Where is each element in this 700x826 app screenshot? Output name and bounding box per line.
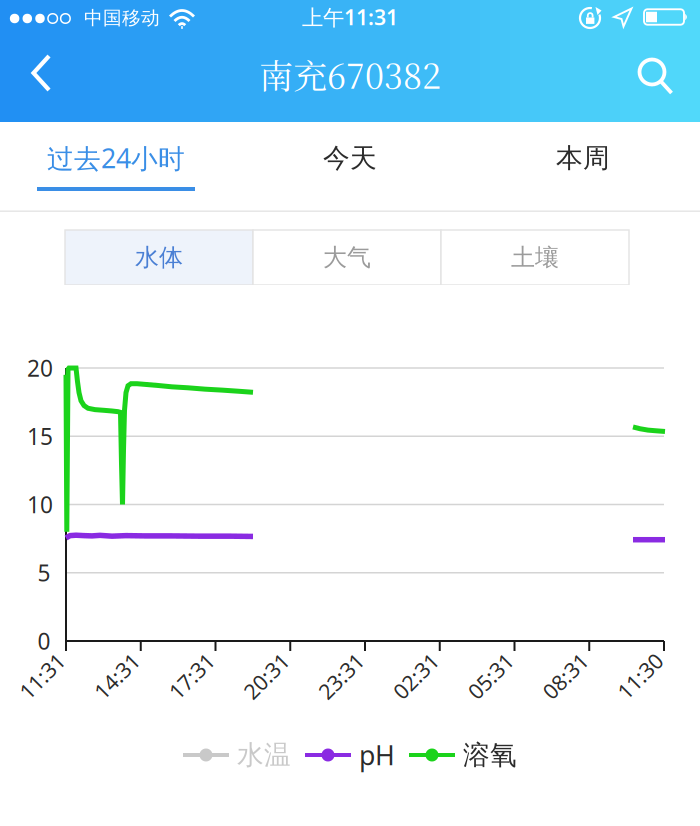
button[interactable]: 今天 bbox=[233, 123, 466, 193]
staticText: 15 bbox=[27, 421, 53, 451]
staticText: 23:31 bbox=[314, 662, 368, 690]
staticText: 20 bbox=[27, 353, 53, 383]
staticText: 本周 bbox=[556, 142, 610, 174]
staticText: 20:31 bbox=[239, 662, 293, 690]
staticText: 08:31 bbox=[538, 662, 592, 690]
staticText: 11:31 bbox=[15, 662, 69, 690]
button[interactable]: Back bbox=[5, 54, 77, 94]
staticText: 过去24小时 bbox=[47, 140, 185, 176]
staticText: 今天 bbox=[323, 142, 377, 174]
button[interactable]: 土壤 bbox=[441, 230, 629, 285]
button[interactable]: 水温 bbox=[183, 739, 291, 771]
staticText: pH bbox=[359, 737, 395, 773]
staticText: 中国移动 bbox=[84, 6, 160, 29]
button[interactable]: 水体 bbox=[65, 230, 253, 285]
staticText: 上午11:31 bbox=[302, 3, 398, 31]
staticText: 溶氧 bbox=[463, 739, 517, 771]
staticText: 14:31 bbox=[90, 662, 144, 690]
staticText: 05:31 bbox=[463, 662, 517, 690]
button[interactable]: 大气 bbox=[253, 230, 441, 285]
staticText: 大气 bbox=[323, 243, 371, 272]
staticText: 水体 bbox=[135, 243, 183, 272]
staticText: 17:31 bbox=[164, 662, 218, 690]
staticText: 10 bbox=[27, 489, 53, 519]
staticText: 02:31 bbox=[389, 662, 443, 690]
staticText: 5 bbox=[37, 558, 50, 588]
button[interactable]: 过去24小时 bbox=[0, 123, 232, 193]
staticText: 土壤 bbox=[511, 243, 559, 272]
button[interactable]: 溶氧 bbox=[409, 739, 517, 771]
staticText: 水温 bbox=[237, 739, 291, 771]
button[interactable]: pH bbox=[305, 737, 395, 773]
button[interactable]: Search bbox=[633, 55, 677, 101]
staticText: 南充670382 bbox=[259, 50, 441, 98]
staticText: 11:30 bbox=[613, 662, 667, 690]
button[interactable]: 本周 bbox=[466, 123, 699, 193]
staticText: 0 bbox=[37, 626, 50, 656]
